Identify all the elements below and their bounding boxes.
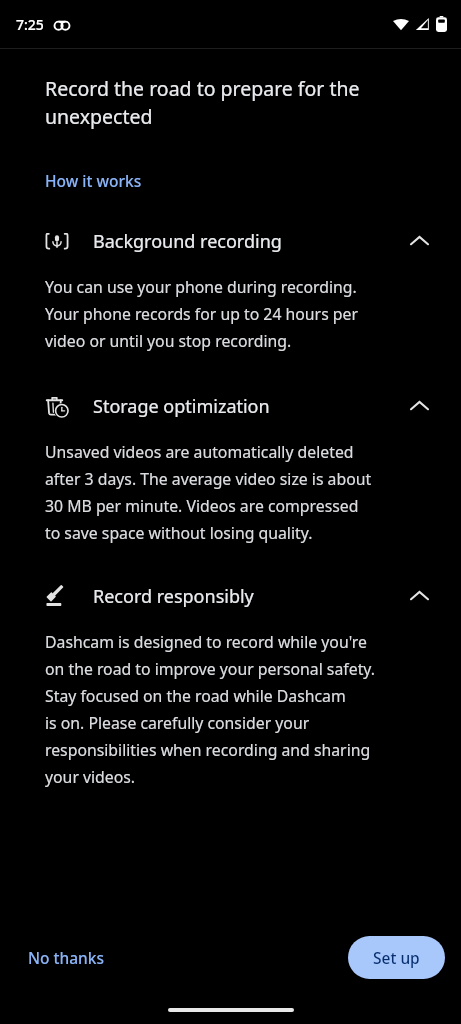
staticText: You can use your phone during recording.… [45,276,358,351]
button[interactable]: Record responsibly [0,576,461,616]
staticText: Set up [373,947,420,968]
other: Collapse Background recording [405,227,433,255]
other: Collapse Storage optimization [405,392,433,420]
button[interactable]: No thanks [16,939,116,976]
staticText: Record responsibly [93,584,405,609]
staticText: Storage optimization [93,394,405,419]
other: Collapse Record responsibly [405,582,433,610]
button[interactable]: Storage optimization [0,386,461,426]
staticText: 7:25 [16,15,44,34]
button[interactable]: Background recording [0,221,461,261]
staticText: Dashcam is designed to record while you'… [45,631,375,787]
staticText: Unsaved videos are automatically deleted… [45,441,372,543]
staticText: Background recording [93,229,405,254]
staticText: No thanks [28,947,104,968]
button[interactable]: Set up [348,936,445,979]
staticText: Record the road to prepare for the unexp… [45,75,360,130]
button[interactable]: How it works [45,170,142,191]
staticText: How it works [45,170,142,191]
